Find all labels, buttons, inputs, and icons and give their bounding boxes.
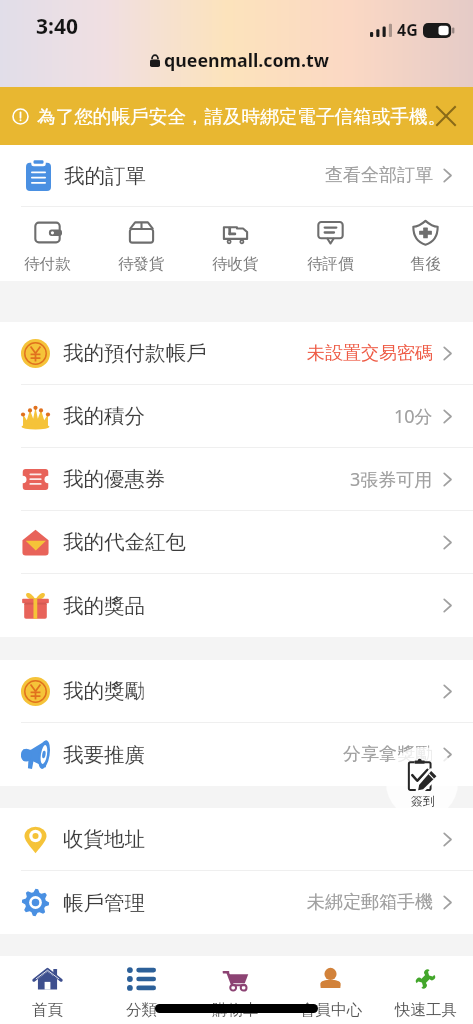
button[interactable]: 關閉 (433, 103, 459, 129)
button[interactable]: 我的獎品 (0, 574, 473, 637)
staticText: 待發貨 (118, 254, 165, 274)
staticText: 4G (397, 19, 418, 41)
button[interactable]: 待收貨 (188, 207, 283, 281)
staticText: 我的代金紅包 (63, 529, 186, 555)
staticText: 快速工具 (395, 1000, 457, 1020)
staticText: 售後 (410, 254, 441, 274)
staticText: 待付款 (24, 254, 71, 274)
staticText: 收貨地址 (63, 826, 145, 852)
button[interactable]: 售後 (378, 207, 473, 281)
staticText: 待評價 (307, 254, 354, 274)
staticText: 查看全部訂單 (325, 164, 433, 187)
button[interactable]: 我的預付款帳戶 (0, 322, 473, 384)
staticText: 帳戶管理 (63, 890, 145, 916)
staticText: 我的獎勵 (63, 678, 145, 704)
button[interactable]: 簽到 (386, 747, 458, 819)
staticText: 分類 (126, 1000, 157, 1020)
staticText: 我的優惠券 (63, 466, 166, 492)
button[interactable]: 我要推廣 (0, 723, 473, 786)
staticText: queenmall.com.tw (164, 48, 329, 72)
staticText: 我的訂單 (64, 163, 146, 189)
staticText: 我的積分 (63, 403, 145, 429)
staticText: 分享拿獎勵 (343, 743, 433, 766)
button[interactable]: 快速工具 (378, 956, 473, 1024)
staticText: 首頁 (32, 1000, 63, 1020)
button[interactable]: 我的獎勵 (0, 660, 473, 722)
staticText: 待收貨 (212, 254, 259, 274)
button[interactable]: 待付款 (0, 207, 94, 281)
staticText: 簽到 (411, 793, 435, 808)
button[interactable]: 會員中心 (283, 956, 378, 1024)
staticText: 我的獎品 (63, 593, 145, 619)
staticText: 為了您的帳戶安全，請及時綁定電子信箱或手機。 (37, 105, 447, 128)
staticText: 3張券可用 (350, 467, 433, 492)
button[interactable]: 我的優惠券 (0, 448, 473, 510)
button[interactable]: 我的積分 (0, 385, 473, 447)
button[interactable]: 分類 (94, 956, 188, 1024)
button[interactable]: 購物車 (188, 956, 283, 1024)
staticText: 10分 (394, 404, 433, 429)
staticText: 購物車 (212, 1000, 259, 1020)
button[interactable]: 我的代金紅包 (0, 511, 473, 573)
button[interactable]: 帳戶管理 (0, 871, 473, 934)
staticText: 會員中心 (300, 1000, 362, 1020)
button[interactable]: 首頁 (0, 956, 94, 1024)
button[interactable]: 待發貨 (94, 207, 188, 281)
staticText: 我要推廣 (63, 742, 145, 768)
button[interactable]: 待評價 (283, 207, 378, 281)
staticText: 我的預付款帳戶 (63, 340, 207, 366)
button[interactable]: 收貨地址 (0, 808, 473, 870)
staticText: 未設置交易密碼 (307, 342, 433, 365)
button[interactable]: 我的訂單 (0, 145, 473, 206)
staticText: 3:40 (36, 12, 78, 41)
staticText: 未綁定郵箱手機 (307, 891, 433, 914)
